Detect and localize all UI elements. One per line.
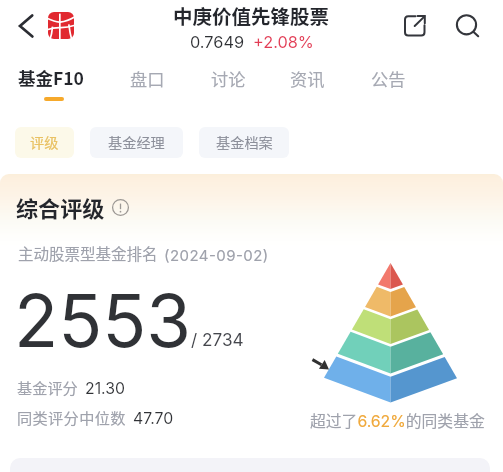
staticText: 资讯 — [290, 66, 325, 91]
staticText: 主动股票型基金排名 — [18, 242, 158, 264]
staticText: 超过了6.62%的同类基金 — [310, 409, 485, 432]
button[interactable]: 基金F10 — [18, 65, 84, 90]
button[interactable]: 基金档案 — [199, 127, 289, 158]
staticText: 中庚价值先锋股票 — [173, 1, 330, 29]
staticText: 0.7649 — [190, 32, 245, 52]
staticText: 基金评分 — [17, 376, 78, 398]
staticText: 21.30 — [85, 379, 125, 398]
button[interactable]: 盘口 — [130, 66, 165, 91]
button[interactable]: Back — [6, 8, 42, 44]
staticText: 公告 — [371, 66, 406, 91]
staticText: 同类评分中位数 — [17, 406, 126, 428]
staticText: 盘口 — [130, 66, 165, 91]
staticText: / 2734 — [191, 329, 244, 350]
staticText: 47.70 — [133, 409, 174, 428]
staticText: 基金经理 — [108, 132, 165, 153]
button[interactable]: 讨论 — [211, 66, 246, 91]
button[interactable]: Share — [400, 11, 430, 41]
button[interactable]: 资讯 — [290, 66, 325, 91]
staticText: (2024-09-02) — [164, 246, 269, 264]
staticText: 2553 — [14, 277, 192, 365]
button[interactable]: 公告 — [371, 66, 406, 91]
button[interactable]: 评级 — [15, 127, 74, 158]
button[interactable]: Search — [451, 9, 484, 42]
staticText: 基金档案 — [216, 132, 273, 153]
staticText: 讨论 — [211, 66, 246, 91]
button[interactable]: 基金经理 — [90, 127, 183, 158]
staticText: +2.08% — [253, 32, 314, 52]
staticText: 评级 — [30, 132, 59, 153]
staticText: 基金F10 — [18, 65, 84, 90]
staticText: 综合评级 — [16, 191, 105, 223]
